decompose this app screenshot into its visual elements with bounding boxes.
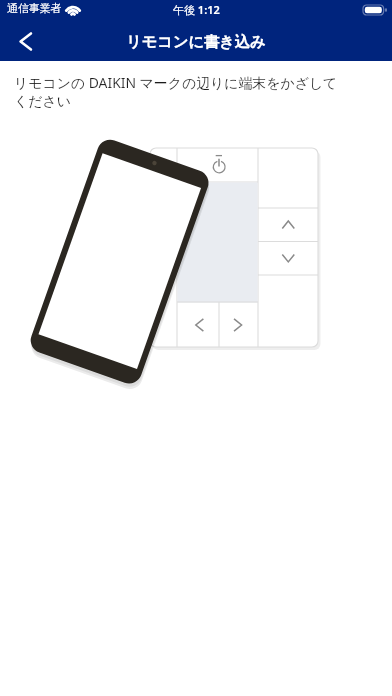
staticText: 午後 1:12 bbox=[173, 2, 220, 17]
staticText: リモコンに書き込み bbox=[126, 32, 266, 51]
staticText: 通信事業者 bbox=[7, 2, 62, 16]
button[interactable]: Back bbox=[0, 22, 50, 61]
staticText: リモコンの DAIKIN マークの辺りに端末をかざしてください bbox=[14, 73, 350, 110]
